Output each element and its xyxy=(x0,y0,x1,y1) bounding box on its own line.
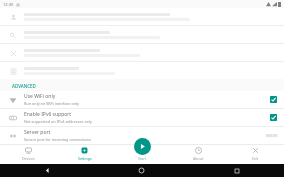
staticText: Run only on WiFi interface only xyxy=(24,101,80,106)
button[interactable]: Back xyxy=(0,164,94,177)
staticText: Secure port for incoming connections xyxy=(24,137,91,142)
button[interactable] xyxy=(0,26,284,44)
staticText: About xyxy=(193,156,204,161)
staticText: Devices xyxy=(22,156,35,161)
staticText: Settings xyxy=(78,156,92,161)
staticText: Not supported on IPv4 addresses only xyxy=(24,119,92,124)
button[interactable]: Use WiFi only xyxy=(0,91,284,109)
button[interactable]: Server port xyxy=(0,127,284,145)
button[interactable]: Start xyxy=(134,138,151,155)
button[interactable]: About xyxy=(170,144,227,164)
button[interactable]: Enable IPv6 support xyxy=(0,109,284,127)
button[interactable]: Home xyxy=(94,164,189,177)
staticText: Enable application logs xyxy=(24,147,79,154)
button[interactable]: Devices xyxy=(0,144,56,164)
staticText: Collect application logs xyxy=(24,155,66,160)
staticText: Start xyxy=(138,156,147,161)
button[interactable]: Checked xyxy=(269,113,278,122)
staticText: Enable IPv6 support xyxy=(24,111,72,118)
staticText: 12:30 xyxy=(3,2,14,7)
button[interactable] xyxy=(0,62,284,79)
button[interactable]: Exit xyxy=(227,144,284,164)
staticText: 65535 xyxy=(266,133,278,138)
button[interactable]: Checked xyxy=(269,95,278,104)
staticText: Exit xyxy=(252,156,259,161)
staticText: ADVANCED xyxy=(12,83,36,89)
button[interactable]: Enable application logs xyxy=(0,145,284,162)
staticText: Server port xyxy=(24,129,51,136)
staticText: Use WiFi only xyxy=(24,93,56,100)
button[interactable] xyxy=(0,8,284,26)
button[interactable]: Settings xyxy=(56,144,113,164)
button[interactable]: Recents xyxy=(189,164,284,177)
button[interactable] xyxy=(0,44,284,62)
